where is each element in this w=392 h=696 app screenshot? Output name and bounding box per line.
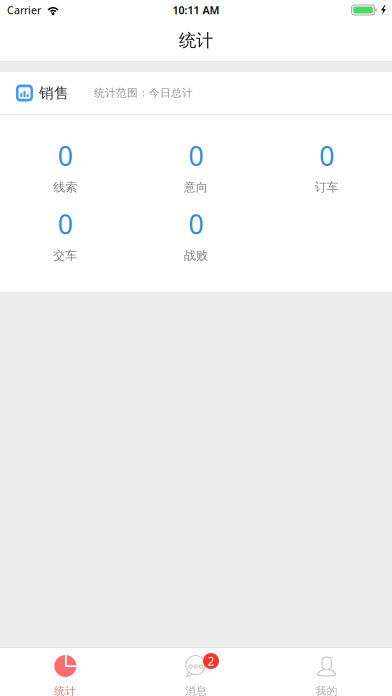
staticText: 订车	[315, 180, 339, 195]
staticText: 0	[58, 206, 73, 242]
staticText: 消息	[185, 684, 207, 696]
staticText: 销售	[39, 84, 69, 102]
button[interactable]: 我的	[261, 648, 392, 696]
staticText: 10:11 AM	[172, 3, 219, 17]
staticText: 统计	[54, 684, 76, 696]
staticText: 战败	[184, 248, 208, 263]
staticText: 统计范围：今日总计	[94, 86, 193, 99]
staticText: 交车	[53, 248, 77, 263]
staticText: 0	[188, 138, 203, 173]
staticText: 2	[207, 653, 214, 669]
staticText: Carrier	[7, 3, 41, 17]
staticText: 0	[319, 138, 334, 173]
staticText: 线索	[53, 180, 77, 195]
button[interactable]: 统计	[0, 648, 131, 696]
button[interactable]: 消息	[131, 648, 261, 696]
staticText: 我的	[316, 684, 338, 696]
staticText: 0	[188, 206, 203, 242]
staticText: 意向	[184, 180, 208, 195]
staticText: 0	[58, 138, 73, 173]
staticText: 统计	[179, 30, 213, 51]
